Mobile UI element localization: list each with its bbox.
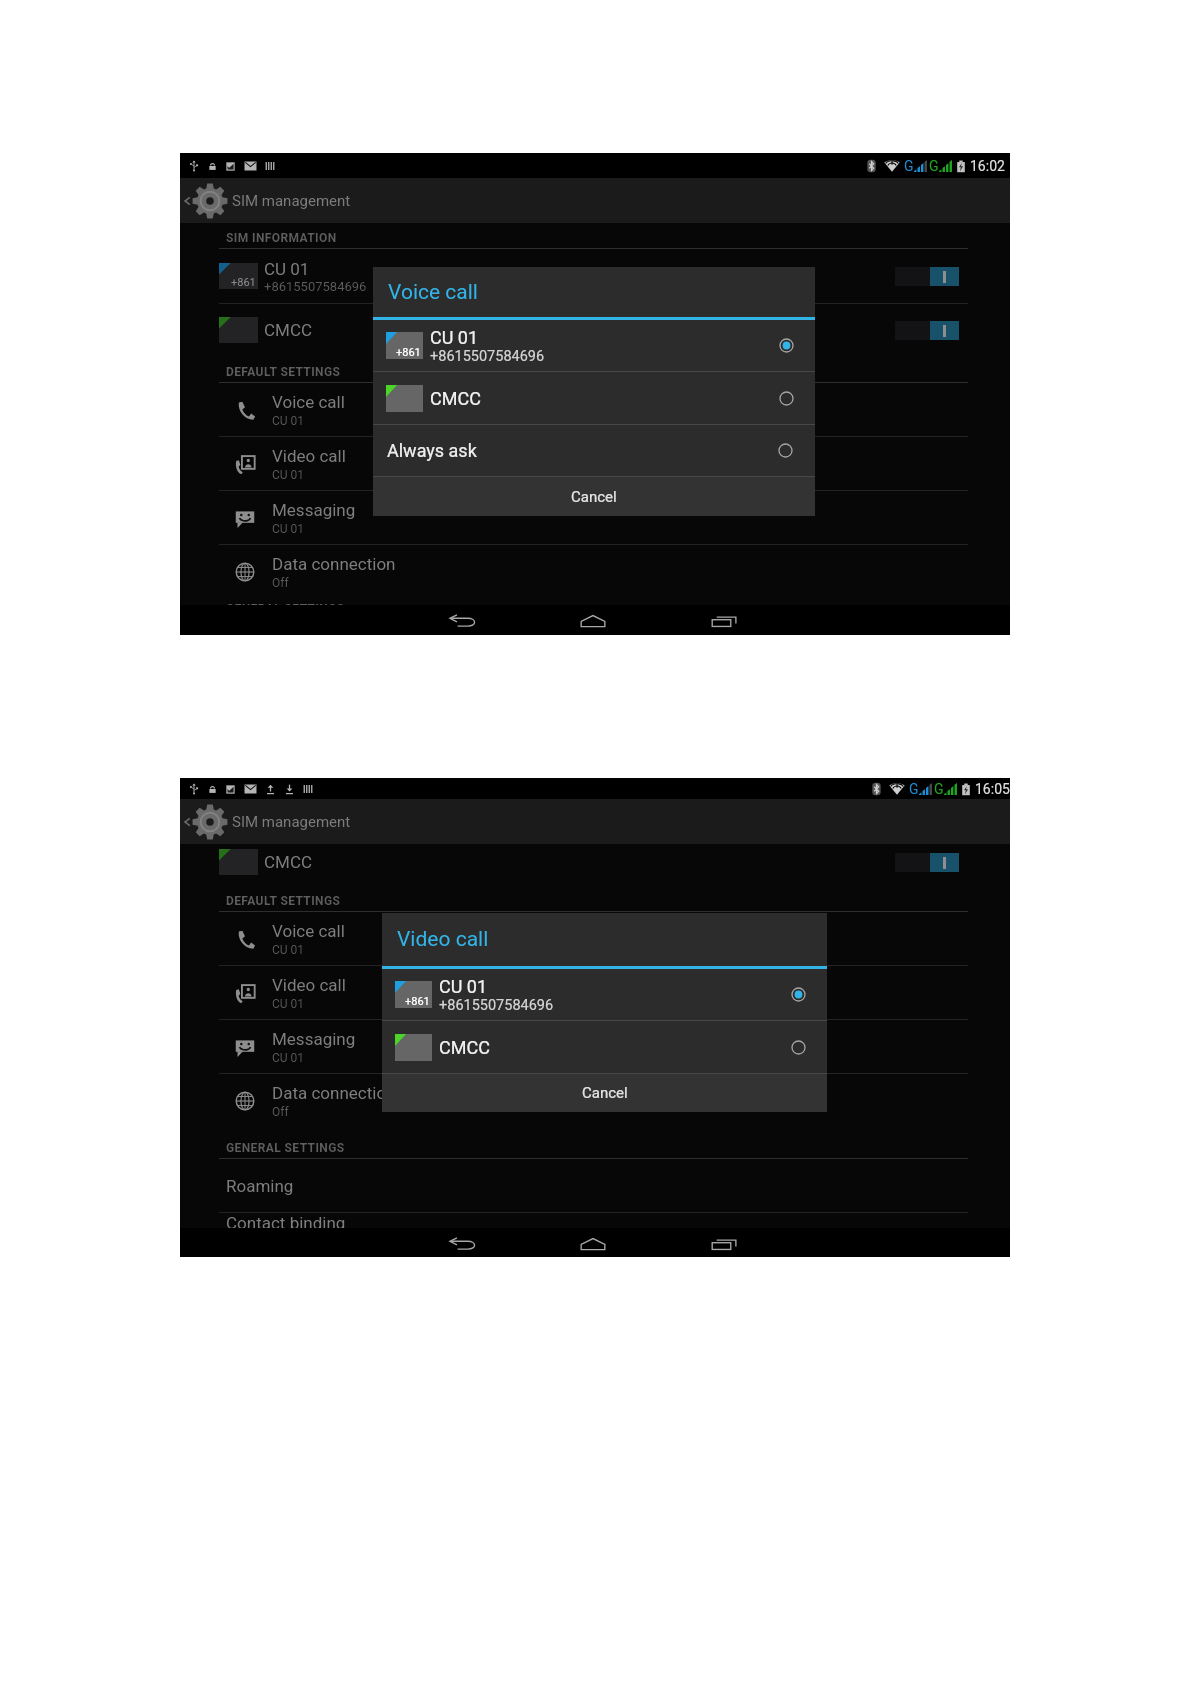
staticText: Off [272, 1105, 289, 1119]
staticText: G [904, 158, 914, 174]
staticText: +861 [231, 276, 256, 289]
staticText: +861 [396, 346, 421, 359]
staticText: G [909, 781, 919, 797]
button[interactable]: Home [563, 1228, 623, 1257]
staticText: CU 01 [272, 997, 305, 1011]
button[interactable]: Always ask [373, 425, 815, 476]
staticText: SIM management [232, 192, 351, 210]
button[interactable]: Navigate up [182, 196, 192, 206]
button[interactable]: Enable SIM [895, 267, 959, 286]
staticText: CU 01 [439, 976, 488, 997]
staticText: Messaging [272, 1029, 356, 1049]
button[interactable]: Navigate up [182, 817, 192, 827]
staticText: CMCC [264, 852, 313, 872]
staticText: GENERAL SETTINGS [226, 1141, 345, 1155]
staticText: CU 01 [430, 327, 479, 348]
staticText: Contact binding [226, 1213, 346, 1228]
staticText: CU 01 [272, 468, 305, 482]
staticText: Voice call [272, 921, 345, 941]
staticText: G [929, 158, 939, 174]
staticText: CU 01 [272, 943, 305, 957]
button[interactable]: Voice call [180, 912, 1010, 965]
button[interactable]: Enable SIM [895, 321, 959, 340]
staticText: Roaming [226, 1176, 294, 1196]
staticText: CMCC [264, 320, 313, 340]
button[interactable]: Back [434, 605, 494, 634]
button[interactable]: CMCC [373, 372, 815, 424]
button[interactable]: Recent apps [695, 1228, 755, 1257]
staticText: Messaging [272, 500, 356, 520]
staticText: SIM INFORMATION [226, 231, 337, 245]
staticText: CU 01 [272, 1051, 305, 1065]
staticText: DEFAULT SETTINGS [226, 365, 341, 379]
staticText: CMCC [430, 388, 481, 409]
staticText: +861 [405, 995, 430, 1008]
staticText: Data connection [272, 1083, 396, 1103]
staticText: 16:02 [970, 158, 1005, 174]
button[interactable]: Back [434, 1228, 494, 1257]
staticText: Data connection [272, 554, 396, 574]
staticText: DEFAULT SETTINGS [226, 894, 341, 908]
staticText: Voice call [388, 280, 478, 305]
staticText: G [934, 781, 944, 797]
staticText: CU 01 [272, 414, 305, 428]
button[interactable]: Home [563, 605, 623, 634]
button[interactable]: CMCC [180, 304, 1010, 356]
staticText: +8615507584696 [430, 348, 545, 365]
button[interactable]: Roaming [180, 1159, 1010, 1212]
button[interactable]: +861 [382, 969, 827, 1020]
staticText: Video call [397, 927, 489, 952]
button[interactable]: CMCC [180, 844, 1010, 880]
button[interactable]: Video call [180, 966, 1010, 1019]
staticText: Voice call [272, 392, 345, 412]
button[interactable]: Navigate up [180, 178, 1010, 223]
staticText: Cancel [582, 1084, 628, 1102]
button[interactable]: CMCC [382, 1021, 827, 1073]
button[interactable]: Contact binding [180, 1213, 1010, 1228]
staticText: Off [272, 576, 289, 590]
staticText: +8615507584696 [264, 279, 367, 294]
staticText: 16:05 [975, 781, 1010, 797]
button[interactable]: Cancel [373, 477, 815, 516]
button[interactable]: Recent apps [695, 605, 755, 634]
staticText: Cancel [571, 488, 617, 506]
button[interactable]: Data connection [180, 1074, 1010, 1127]
button[interactable]: Navigate up [180, 799, 1010, 844]
button[interactable]: Enable SIM [895, 853, 959, 872]
button[interactable]: +861 [180, 249, 1010, 303]
button[interactable]: Messaging [180, 1020, 1010, 1073]
staticText: Video call [272, 975, 346, 995]
staticText: CMCC [439, 1037, 490, 1058]
button[interactable]: +861 [373, 320, 815, 371]
staticText: CU 01 [272, 522, 305, 536]
staticText: SIM management [232, 813, 351, 831]
button[interactable]: Video call [180, 437, 1010, 490]
button[interactable]: Voice call [180, 383, 1010, 436]
staticText: Always ask [387, 440, 477, 461]
staticText: CU 01 [264, 259, 310, 279]
staticText: +8615507584696 [439, 997, 554, 1014]
button[interactable]: Messaging [180, 491, 1010, 544]
button[interactable]: Data connection [180, 545, 1010, 598]
staticText: Video call [272, 446, 346, 466]
staticText: GENERAL SETTINGS [226, 602, 345, 605]
button[interactable]: Cancel [382, 1074, 827, 1112]
